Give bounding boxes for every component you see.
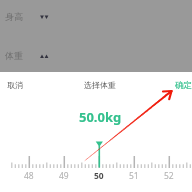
button[interactable]: 体重 [0,48,192,62]
button[interactable]: 身高 [0,9,192,23]
staticText: 选择体重 [84,80,116,90]
staticText: 50 [94,170,104,182]
staticText: 体重 [5,50,23,61]
staticText: 51 [129,170,139,182]
staticText: 48 [24,170,34,182]
staticText: 身高 [5,11,23,22]
staticText: 50.0kg [79,108,122,126]
button[interactable]: 取消 [0,72,30,98]
staticText: 52 [164,170,174,182]
staticText: 49 [59,170,69,182]
other: Annotation arrow [0,0,192,192]
staticText: 取消 [7,80,23,90]
button[interactable]: 确定 [175,72,192,98]
staticText: 确定 [175,80,192,91]
